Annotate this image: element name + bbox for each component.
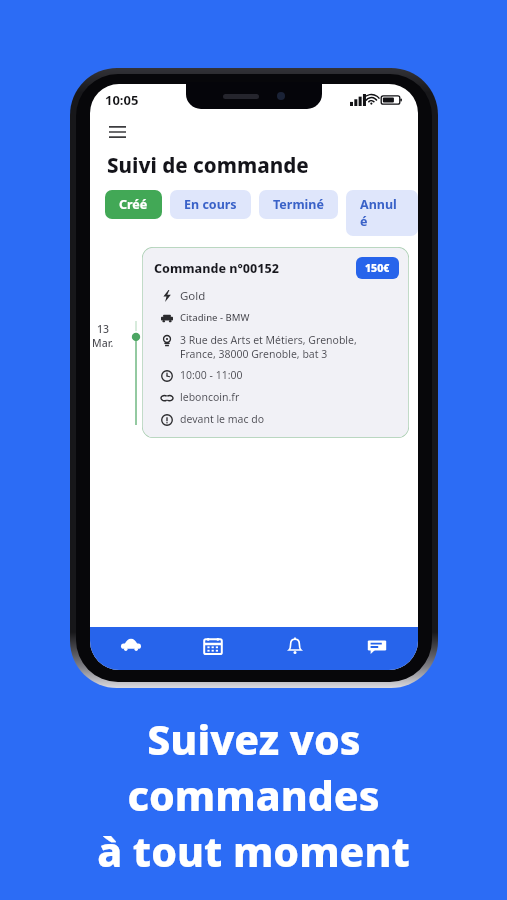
button[interactable]: Messages [336,627,418,670]
button[interactable]: Notifications [254,627,336,670]
button[interactable]: Vehicles [90,627,172,670]
staticText: 10:00 - 11:00 [180,368,243,382]
button[interactable]: Créé [105,190,162,219]
staticText: Annulé [360,196,404,230]
staticText: leboncoin.fr [180,390,240,404]
staticText: Suivez vos [147,711,361,767]
button[interactable]: Calendar [172,627,254,670]
staticText: à tout moment [97,823,410,879]
staticText: 150€ [365,261,390,275]
staticText: Suivi de commande [107,151,309,179]
button[interactable]: Terminé [259,190,338,219]
staticText: Terminé [273,196,324,213]
button[interactable]: Annulé [346,190,418,236]
staticText: devant le mac do [180,412,265,426]
staticText: 13 [97,322,110,336]
button[interactable]: Commande n°00152 [142,247,409,438]
staticText: 10:05 [105,91,139,109]
button[interactable]: En cours [170,190,251,219]
staticText: Créé [119,196,148,213]
staticText: En cours [184,196,237,213]
button[interactable]: 150€ [356,257,399,279]
staticText: commandes [127,767,380,823]
staticText: Commande n°00152 [154,260,279,277]
button[interactable]: Menu [100,115,134,149]
staticText: 3 Rue des Arts et Métiers, Grenoble, Fra… [180,333,357,361]
staticText: Mar. [92,336,114,350]
staticText: Citadine - BMW [180,311,250,324]
staticText: Gold [180,288,206,304]
